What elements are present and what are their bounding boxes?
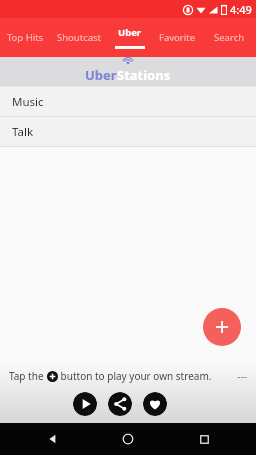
staticText: 4:49: [230, 2, 252, 17]
button[interactable]: Add stream: [203, 308, 241, 346]
staticText: Music: [12, 94, 44, 110]
staticText: Stations: [117, 66, 171, 84]
button[interactable]: Favorite: [143, 392, 167, 416]
staticText: Uber: [118, 26, 142, 39]
button[interactable]: Recents: [192, 427, 216, 451]
staticText: Favorite: [159, 31, 195, 44]
button[interactable]: Home: [116, 427, 140, 451]
button[interactable]: Favorite: [150, 18, 203, 57]
staticText: ---: [237, 369, 247, 383]
button[interactable]: Back: [40, 427, 64, 451]
button[interactable]: Music: [0, 87, 256, 116]
staticText: Shoutcast: [57, 31, 102, 44]
button[interactable]: Share: [108, 392, 132, 416]
staticText: Uber: [85, 66, 117, 84]
staticText: Search: [214, 31, 245, 44]
button[interactable]: Search: [203, 18, 256, 57]
button[interactable]: Shoutcast: [50, 18, 109, 57]
staticText: Top Hits: [7, 31, 44, 44]
staticText: button to play your own stream.: [58, 369, 212, 383]
staticText: Tap the: [9, 369, 47, 383]
button[interactable]: Talk: [0, 117, 256, 146]
button[interactable]: Top Hits: [0, 18, 50, 57]
button[interactable]: Uber: [109, 18, 150, 57]
button[interactable]: Play: [73, 392, 97, 416]
staticText: Talk: [12, 124, 34, 140]
